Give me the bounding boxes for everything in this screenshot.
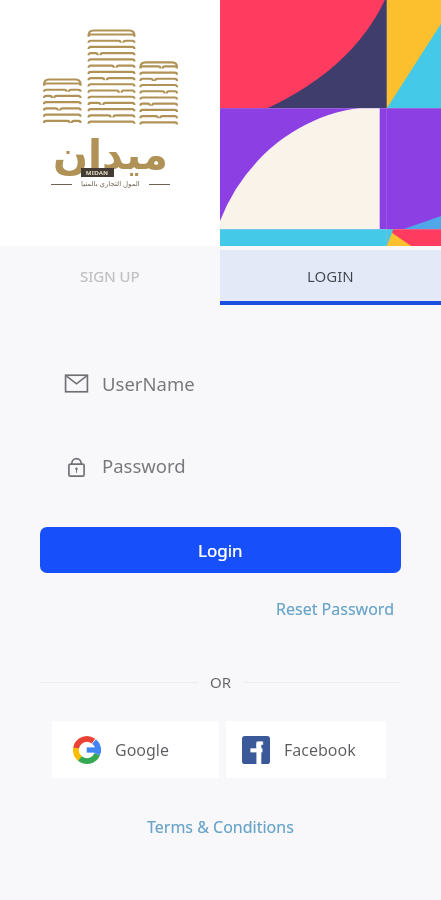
staticText: ميدان [53, 131, 168, 179]
button[interactable]: Terms & Conditions [147, 816, 294, 838]
button[interactable]: LOGIN [220, 246, 441, 305]
staticText: Password [102, 453, 186, 478]
button[interactable]: Password [0, 447, 441, 483]
staticText: Reset Password [276, 598, 394, 620]
button[interactable]: Login [40, 527, 401, 573]
staticText: المول التجاري بالمنيا [81, 179, 140, 189]
staticText: OR [210, 672, 232, 692]
staticText: Google [115, 739, 170, 761]
staticText: Terms & Conditions [147, 816, 294, 838]
staticText: MIDAN [86, 169, 109, 177]
button[interactable]: SIGN UP [0, 246, 220, 305]
staticText: Login [198, 539, 243, 562]
button[interactable]: Facebook [226, 721, 386, 778]
staticText: SIGN UP [80, 266, 140, 286]
staticText: LOGIN [307, 266, 354, 286]
staticText: UserName [102, 371, 195, 396]
button[interactable]: Reset Password [276, 598, 394, 620]
button[interactable]: UserName [0, 365, 441, 401]
button[interactable]: Google [52, 721, 219, 778]
staticText: Facebook [284, 739, 356, 761]
